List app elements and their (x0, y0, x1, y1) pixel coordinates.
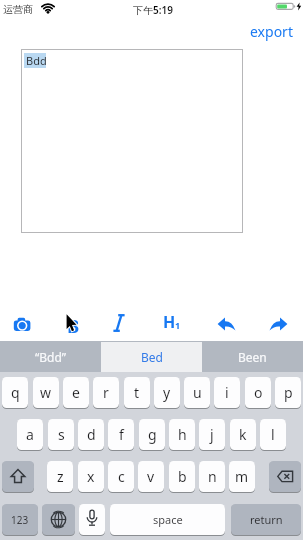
button[interactable]: e (63, 377, 89, 408)
staticText: r (103, 383, 109, 402)
staticText: a (26, 425, 34, 444)
button[interactable]: r (93, 377, 119, 408)
button[interactable]: B (67, 313, 80, 338)
staticText: Been (238, 349, 267, 365)
button[interactable] (10, 312, 35, 336)
staticText: n (208, 467, 217, 486)
staticText: l (271, 425, 275, 444)
button[interactable]: b (169, 461, 195, 492)
button[interactable]: H (163, 313, 183, 333)
button[interactable]: space (110, 504, 225, 535)
button[interactable]: a (17, 419, 43, 450)
button[interactable] (267, 312, 293, 336)
staticText: 下午5:19 (133, 3, 173, 17)
staticText: z (57, 467, 64, 486)
button[interactable]: m (229, 461, 255, 492)
button[interactable] (79, 504, 105, 535)
button[interactable] (2, 461, 34, 492)
button[interactable]: k (230, 419, 256, 450)
staticText: Bed (141, 349, 163, 365)
button[interactable]: v (138, 461, 164, 492)
staticText: w (40, 383, 52, 402)
staticText: k (239, 425, 247, 444)
staticText: return (250, 512, 283, 527)
staticText: v (147, 467, 155, 486)
staticText: i (225, 383, 229, 402)
button[interactable]: q (2, 377, 28, 408)
staticText: j (210, 425, 214, 444)
button[interactable]: x (78, 461, 104, 492)
staticText: f (119, 425, 124, 444)
button[interactable]: n (199, 461, 225, 492)
staticText: e (72, 383, 80, 402)
button[interactable]: j (199, 419, 225, 450)
button[interactable]: w (33, 377, 59, 408)
button[interactable] (110, 312, 128, 334)
staticText: o (254, 383, 263, 402)
button[interactable]: c (108, 461, 134, 492)
staticText: g (148, 425, 157, 444)
staticText: “Bdd” (35, 349, 67, 365)
button[interactable] (21, 49, 243, 233)
button[interactable]: f (108, 419, 134, 450)
staticText: q (11, 383, 20, 402)
staticText: u (193, 383, 202, 402)
button[interactable]: p (275, 377, 301, 408)
button[interactable]: l (260, 419, 286, 450)
staticText: Bdd (26, 53, 47, 68)
button[interactable]: o (245, 377, 271, 408)
button[interactable] (42, 504, 75, 535)
staticText: 运营商 (3, 3, 33, 16)
button[interactable]: z (47, 461, 73, 492)
staticText: 123 (11, 513, 29, 527)
staticText: b (178, 467, 187, 486)
button[interactable]: export (250, 22, 293, 41)
staticText: B (67, 313, 80, 338)
button[interactable]: h (169, 419, 195, 450)
staticText: h (178, 425, 187, 444)
button[interactable]: s (48, 419, 74, 450)
button[interactable]: d (78, 419, 104, 450)
staticText: s (58, 425, 65, 444)
button[interactable] (269, 461, 301, 492)
staticText: export (250, 22, 293, 41)
staticText: t (134, 383, 140, 402)
button[interactable]: Been (202, 341, 303, 372)
button[interactable]: “Bdd” (0, 341, 101, 372)
staticText: x (87, 467, 95, 486)
staticText: 1 (175, 319, 181, 331)
button[interactable]: u (184, 377, 210, 408)
button[interactable]: i (214, 377, 240, 408)
staticText: H (163, 311, 176, 331)
staticText: c (118, 467, 125, 486)
button[interactable]: g (139, 419, 165, 450)
button[interactable] (101, 342, 202, 373)
staticText: d (87, 425, 96, 444)
button[interactable] (215, 312, 241, 336)
staticText: y (163, 383, 171, 402)
button[interactable]: 123 (2, 504, 38, 535)
staticText: m (235, 467, 249, 486)
button[interactable]: t (124, 377, 150, 408)
staticText: space (153, 512, 183, 527)
button[interactable]: y (154, 377, 180, 408)
button[interactable]: return (231, 504, 301, 535)
staticText: p (284, 383, 293, 402)
